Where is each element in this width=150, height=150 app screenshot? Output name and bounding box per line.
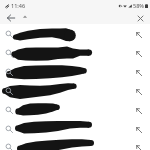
button[interactable]: Insert suggestion xyxy=(0,101,150,120)
button[interactable]: Insert suggestion xyxy=(133,48,145,60)
staticText: 58% xyxy=(133,2,144,9)
button[interactable]: Insert suggestion xyxy=(133,124,145,136)
button[interactable]: Insert suggestion xyxy=(0,82,150,101)
button[interactable]: Insert suggestion xyxy=(133,86,145,98)
button[interactable]: Insert suggestion xyxy=(0,120,150,139)
button[interactable]: Insert suggestion xyxy=(0,63,150,82)
button[interactable]: Insert suggestion xyxy=(0,138,150,150)
button[interactable]: Insert suggestion xyxy=(133,142,145,150)
button[interactable]: Insert suggestion xyxy=(133,67,145,79)
button[interactable]: Insert suggestion xyxy=(133,105,145,117)
button[interactable]: Insert suggestion xyxy=(133,29,145,41)
staticText: 11:46 xyxy=(11,2,26,9)
button[interactable]: Insert suggestion xyxy=(0,44,150,63)
button[interactable]: Insert suggestion xyxy=(0,25,150,44)
button[interactable]: Clear query xyxy=(133,11,148,26)
button[interactable]: Back xyxy=(4,11,18,25)
